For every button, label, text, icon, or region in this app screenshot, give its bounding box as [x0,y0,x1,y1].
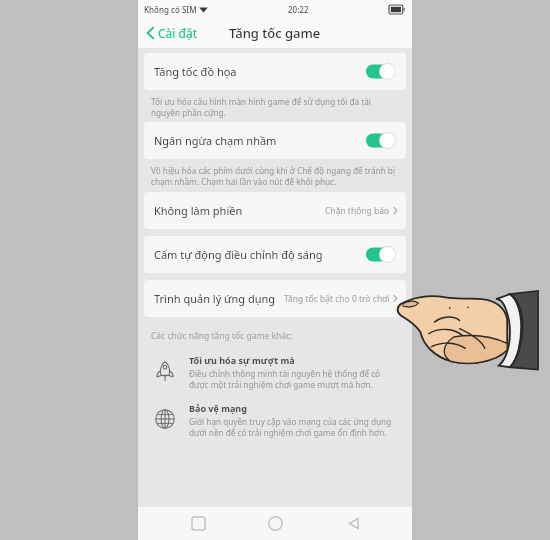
button[interactable]: Toggle [366,132,396,149]
button[interactable]: Home [257,507,293,540]
button[interactable]: Globe [138,402,412,438]
button[interactable]: Tăng tốc đồ họa [144,53,406,90]
button[interactable]: Không làm phiền [144,192,406,229]
staticText: Các chức năng tăng tốc game khác: [151,330,293,342]
button[interactable]: Ngăn ngừa chạm nhầm [144,122,406,159]
staticText: Tăng tốc bật cho 0 trò chơi [284,293,390,305]
button[interactable]: Recent apps [180,507,216,540]
staticText: Vô hiệu hóa các phím dưới cùng khi ở Chế… [151,165,398,187]
other: Rocket [152,358,178,384]
staticText: Tối ưu hóa sự mượt mà [189,354,295,366]
button[interactable]: Toggle [366,246,396,263]
staticText: Bảo vệ mạng [189,402,247,414]
staticText: Tăng tốc đồ họa [154,64,366,79]
staticText: Trình quản lý ứng dụng [154,291,276,306]
staticText: Chặn thông báo [325,205,390,217]
button[interactable]: Cài đặt [143,22,201,44]
button[interactable]: Toggle [366,63,396,80]
staticText: Điều chỉnh thông minh tài nguyên hệ thốn… [189,368,398,390]
staticText: Không làm phiền [154,203,243,218]
staticText: Không có SIM [144,4,197,15]
button[interactable]: Cấm tự động điều chỉnh độ sáng [144,236,406,273]
staticText: Cấm tự động điều chỉnh độ sáng [154,247,366,262]
button[interactable]: Trình quản lý ứng dụng [144,280,406,317]
staticText: Tối ưu hóa cấu hình màn hình game để sử … [151,96,398,118]
button[interactable]: Rocket [138,354,412,390]
staticText: Giới hạn quyền truy cập vào mạng của các… [189,416,398,438]
staticText: Tăng tốc game [229,24,321,42]
other: Globe [152,406,178,432]
staticText: Ngăn ngừa chạm nhầm [154,133,366,148]
button[interactable]: Back [335,507,371,540]
staticText: Cài đặt [158,25,198,41]
staticText: 20:22 [288,4,309,15]
